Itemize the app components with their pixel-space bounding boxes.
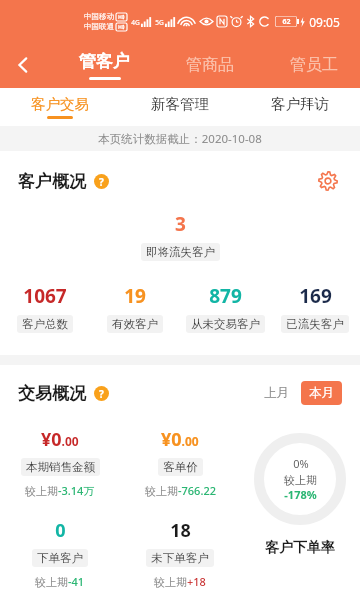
button[interactable]: 说明 xyxy=(94,174,109,189)
staticText: 上月 xyxy=(264,385,289,401)
staticText: 未下单客户 xyxy=(151,551,209,565)
staticText: 18 xyxy=(170,518,191,543)
staticText: 较上期-766.22 xyxy=(145,483,216,498)
staticText: 已流失客户 xyxy=(286,317,344,331)
button[interactable]: 本月 xyxy=(301,381,342,405)
staticText: 较上期-3.14万 xyxy=(25,483,95,498)
button[interactable]: 管客户 xyxy=(62,42,146,88)
staticText: 本月 xyxy=(309,385,334,401)
button[interactable]: 设置 xyxy=(314,167,342,195)
button[interactable]: 上月 xyxy=(258,381,295,405)
staticText: 管客户 xyxy=(79,51,130,72)
staticText: 62 xyxy=(282,17,291,27)
staticText: 客户交易 xyxy=(31,95,89,113)
button[interactable]: 说明 xyxy=(94,386,109,401)
staticText: ¥0.00 xyxy=(41,427,79,452)
staticText: 从未交易客户 xyxy=(191,317,260,331)
staticText: 879 xyxy=(209,283,242,309)
button[interactable]: 返回 xyxy=(0,42,46,88)
staticText: ¥0.00 xyxy=(161,427,199,452)
staticText: 有效客户 xyxy=(112,317,158,331)
staticText: 中国移动 xyxy=(84,12,114,21)
staticText: 0 xyxy=(55,518,66,543)
staticText: 交易概况 xyxy=(18,383,86,404)
button[interactable]: ¥0.00 xyxy=(0,427,120,498)
staticText: 中国联通 xyxy=(84,22,114,31)
staticText: 1067 xyxy=(23,283,67,309)
staticText: 09:05 xyxy=(309,14,340,30)
staticText: 5G xyxy=(155,18,164,27)
button[interactable]: 169 xyxy=(270,283,360,333)
staticText: 19 xyxy=(124,283,146,309)
button[interactable]: 879 xyxy=(180,283,270,333)
staticText: 0% xyxy=(293,456,309,471)
button[interactable]: 管员工 xyxy=(272,42,356,88)
staticText: 较上期-41 xyxy=(35,574,85,589)
staticText: 169 xyxy=(299,283,332,309)
staticText: 新客管理 xyxy=(151,95,209,113)
button[interactable]: 客户交易 xyxy=(0,88,120,126)
button[interactable]: ¥0.00 xyxy=(120,427,240,498)
staticText: ? xyxy=(99,387,104,401)
staticText: 本期销售金额 xyxy=(26,460,95,474)
staticText: 管员工 xyxy=(290,55,338,75)
staticText: 本页统计数据截止：2020-10-08 xyxy=(98,131,262,147)
staticText: 客户总数 xyxy=(22,317,68,331)
staticText: 较上期+18 xyxy=(154,574,206,589)
button[interactable]: 新客管理 xyxy=(120,88,240,126)
staticText: 管商品 xyxy=(186,55,234,75)
staticText: 客单价 xyxy=(163,460,198,474)
button[interactable]: 1067 xyxy=(0,283,90,333)
staticText: 客户拜访 xyxy=(271,95,329,113)
button[interactable]: 18 xyxy=(120,518,240,589)
staticText: 3 xyxy=(175,211,186,237)
staticText: 下单客户 xyxy=(37,551,83,565)
button[interactable]: 0 xyxy=(0,518,120,589)
button[interactable]: 客户拜访 xyxy=(240,88,360,126)
staticText: 客户下单率 xyxy=(265,539,335,557)
staticText: 4G xyxy=(131,18,140,27)
button[interactable]: 19 xyxy=(90,283,180,333)
staticText: -178% xyxy=(284,487,317,502)
button[interactable]: 管商品 xyxy=(168,42,252,88)
staticText: ? xyxy=(99,175,104,189)
staticText: 较上期 xyxy=(284,473,317,487)
staticText: 客户概况 xyxy=(18,171,86,192)
staticText: 即将流失客户 xyxy=(146,245,215,259)
